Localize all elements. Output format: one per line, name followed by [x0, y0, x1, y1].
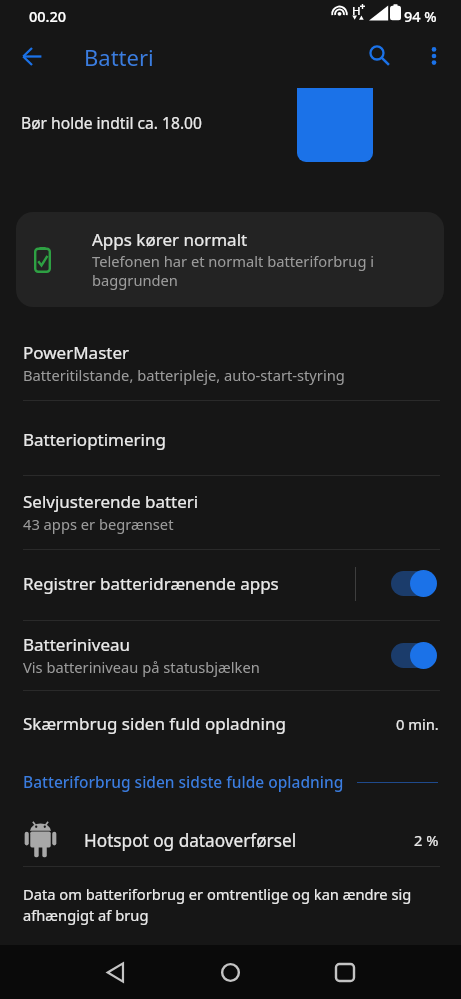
button[interactable]: Recent apps: [317, 945, 373, 999]
button[interactable]: Skærmbrug siden fuld opladning: [0, 691, 461, 753]
staticText: Bør holde indtil ca. 18.00: [21, 112, 202, 133]
staticText: PowerMaster: [23, 341, 130, 364]
staticText: 43 apps er begrænset: [23, 514, 174, 534]
button[interactable]: Back: [9, 33, 55, 79]
button[interactable]: Hotspot og dataoverførsel: [0, 812, 461, 866]
staticText: Skærmbrug siden fuld opladning: [23, 712, 286, 735]
staticText: Batteri: [84, 42, 154, 72]
button[interactable]: Search: [356, 32, 402, 78]
staticText: Batteritilstande, batteripleje, auto-sta…: [23, 365, 345, 385]
staticText: Telefonen har et normalt batteriforbrug …: [92, 251, 402, 290]
staticText: Selvjusterende batteri: [23, 490, 199, 513]
staticText: Vis batteriniveau på statusbjælken: [23, 657, 260, 677]
button[interactable]: PowerMaster: [0, 326, 461, 400]
button[interactable]: More options: [411, 33, 457, 79]
staticText: Batteriniveau: [23, 633, 131, 656]
staticText: Batteriforbrug siden sidste fulde opladn…: [23, 771, 344, 792]
button[interactable]: Back: [87, 945, 143, 999]
staticText: Hotspot og dataoverførsel: [84, 829, 297, 852]
button[interactable]: Home: [202, 945, 258, 999]
button[interactable]: Toggle: [391, 570, 436, 597]
button[interactable]: Registrer batteridrænende apps: [0, 550, 461, 620]
button[interactable]: Batteriniveau: [0, 621, 461, 690]
staticText: Apps kører normalt: [92, 228, 248, 251]
staticText: 00.20: [29, 6, 67, 26]
button[interactable]: Selvjusterende batteri: [0, 476, 461, 549]
staticText: H: [352, 3, 361, 19]
staticText: 2 %: [414, 830, 439, 850]
button[interactable]: Toggle: [391, 642, 436, 669]
button[interactable]: Apps kører normalt: [16, 212, 444, 307]
staticText: Registrer batteridrænende apps: [23, 572, 279, 595]
staticText: Data om batteriforbrug er omtrentlige og…: [23, 884, 428, 926]
button[interactable]: Batterioptimering: [0, 401, 461, 475]
staticText: 0 min.: [396, 714, 439, 734]
staticText: Batterioptimering: [23, 428, 166, 451]
staticText: 94 %: [404, 6, 437, 26]
